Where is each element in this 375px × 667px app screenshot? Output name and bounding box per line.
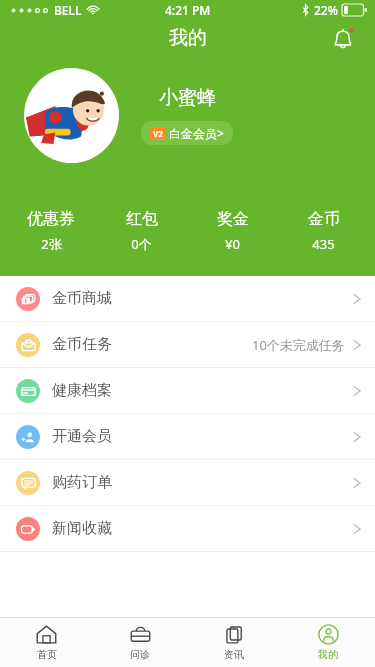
staticText: 22%: [314, 2, 338, 18]
staticText: 问诊: [130, 648, 150, 661]
staticText: ¥0: [225, 235, 240, 253]
button[interactable]: 开通会员: [0, 414, 375, 459]
button[interactable]: 健康档案: [0, 368, 375, 413]
staticText: 金币商城: [52, 289, 112, 308]
button[interactable]: 奖金: [187, 209, 278, 253]
staticText: 4:21 PM: [165, 2, 211, 18]
staticText: V2: [153, 128, 163, 139]
staticText: 优惠券: [27, 209, 75, 229]
staticText: 0个: [131, 235, 152, 253]
button[interactable]: Notifications: [325, 22, 361, 58]
button[interactable]: V2: [141, 121, 233, 145]
staticText: 新闻收藏: [52, 519, 112, 538]
button[interactable]: 金币任务: [0, 322, 375, 367]
button[interactable]: 红包: [96, 209, 187, 253]
button[interactable]: 新闻收藏: [0, 506, 375, 551]
button[interactable]: 我的: [281, 618, 375, 667]
staticText: 奖金: [217, 209, 249, 229]
staticText: 我的: [169, 26, 207, 50]
button[interactable]: 资讯: [187, 618, 281, 667]
staticText: 435: [312, 235, 335, 253]
button[interactable]: 优惠券: [6, 209, 96, 253]
button[interactable]: 金币: [278, 209, 369, 253]
staticText: 金币任务: [52, 335, 112, 354]
staticText: 白金会员>: [169, 125, 224, 141]
staticText: 2张: [41, 235, 62, 253]
button[interactable]: 购药订单: [0, 460, 375, 505]
button[interactable]: 问诊: [93, 618, 187, 667]
staticText: 首页: [37, 648, 57, 661]
staticText: 健康档案: [52, 381, 112, 400]
button[interactable]: 首页: [0, 618, 93, 667]
staticText: 金币: [308, 209, 340, 229]
staticText: 10个未完成任务: [252, 336, 345, 354]
staticText: 红包: [126, 209, 158, 229]
button[interactable]: Profile photo: [24, 68, 119, 163]
staticText: 资讯: [224, 648, 244, 661]
staticText: BELL: [54, 2, 82, 18]
button[interactable]: 金币商城: [0, 276, 375, 321]
staticText: 我的: [318, 648, 338, 661]
staticText: 小蜜蜂: [159, 86, 216, 110]
staticText: 购药订单: [52, 473, 112, 492]
staticText: 开通会员: [52, 427, 112, 446]
